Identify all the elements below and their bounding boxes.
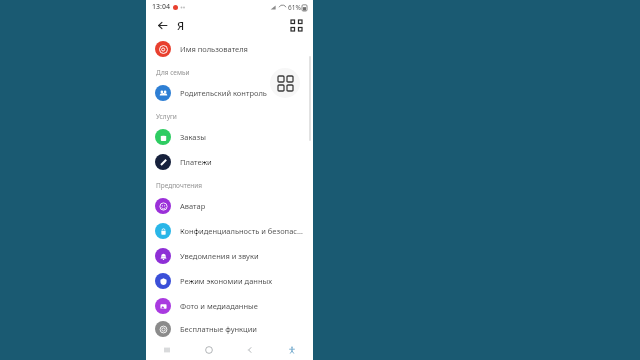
staticText: Родительский контроль <box>180 88 267 98</box>
button[interactable]: Уведомления и звуки <box>146 243 313 268</box>
button[interactable]: Back <box>153 16 171 34</box>
button[interactable]: Recents <box>157 340 177 360</box>
button[interactable]: Бесплатные функции <box>146 318 313 339</box>
button[interactable]: QR code <box>287 16 305 34</box>
staticText: 13:04 <box>152 2 170 12</box>
staticText: Платежи <box>180 157 212 167</box>
button[interactable]: Родительский контроль <box>146 80 313 105</box>
staticText: Уведомления и звуки <box>180 251 259 261</box>
staticText: Для семьи <box>156 68 190 77</box>
button[interactable]: Accessibility <box>282 340 302 360</box>
staticText: Фото и медиаданные <box>180 301 258 311</box>
button[interactable]: Home <box>199 340 219 360</box>
staticText: Аватар <box>180 201 206 211</box>
staticText: Режим экономии данных <box>180 276 273 286</box>
staticText: Конфиденциальность и безопасн… <box>180 226 307 236</box>
button[interactable]: Фото и медиаданные <box>146 293 313 318</box>
staticText: Заказы <box>180 132 206 142</box>
staticText: 61% <box>288 3 301 12</box>
button[interactable]: Имя пользователя <box>146 36 313 61</box>
staticText: Имя пользователя <box>180 44 248 54</box>
button[interactable]: Аватар <box>146 193 313 218</box>
button[interactable]: Платежи <box>146 149 313 174</box>
button[interactable]: Apps grid <box>270 68 300 98</box>
button[interactable]: Режим экономии данных <box>146 268 313 293</box>
staticText: Я <box>177 18 185 33</box>
button[interactable]: Back <box>240 340 260 360</box>
button[interactable]: Заказы <box>146 124 313 149</box>
staticText: Предпочтения <box>156 181 203 190</box>
button[interactable]: Конфиденциальность и безопасн… <box>146 218 313 243</box>
staticText: Услуги <box>156 112 177 121</box>
staticText: Бесплатные функции <box>180 324 257 334</box>
